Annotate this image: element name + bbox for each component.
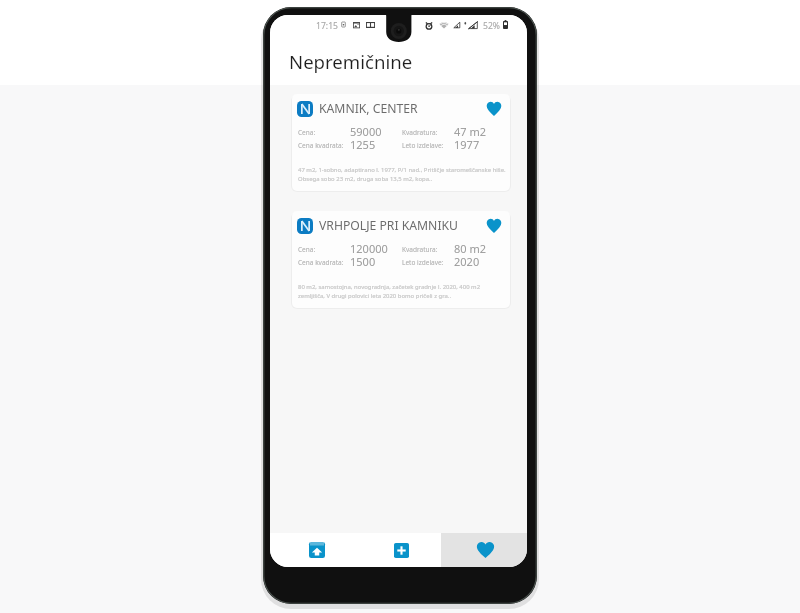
staticText: zemljišča, V drugi polovici leta 2020 bo… [298,292,452,300]
button[interactable]: Favorites [441,533,527,567]
staticText: Kvadratura: [402,245,438,254]
staticText: 47 m2 [454,124,487,139]
button[interactable]: Favorite [486,101,502,116]
button[interactable]: Favorite [486,218,502,233]
staticText: 1255 [350,137,376,152]
button[interactable]: KAMNIK, CENTER [292,94,510,191]
staticText: 17:15 [316,20,338,32]
staticText: 80 m2, samostojna, novogradnja, začetek … [298,283,481,291]
staticText: Cena: [298,245,316,254]
staticText: 120000 [350,241,388,256]
staticText: Kvadratura: [402,128,438,137]
staticText: VRHPOLJE PRI KAMNIKU [319,217,458,234]
staticText: Nepremičnine [289,49,413,74]
button[interactable]: Add [355,533,441,567]
staticText: 2020 [454,254,480,269]
staticText: 52% [483,20,500,32]
staticText: 1500 [350,254,376,269]
staticText: Cena kvadrata: [298,258,344,267]
button[interactable]: VRHPOLJE PRI KAMNIKU [292,211,510,308]
staticText: Obsega sobo 23 m2, druga soba 13,5 m2, k… [298,175,433,183]
staticText: 1977 [454,137,480,152]
staticText: Leto izdelave: [402,258,444,267]
staticText: Cena: [298,128,316,137]
button[interactable]: Upload [270,533,355,567]
staticText: KAMNIK, CENTER [319,100,418,117]
staticText: Cena kvadrata: [298,141,344,150]
staticText: 80 m2 [454,241,487,256]
staticText: 47 m2, 1-sobno, adaptirano l. 1977, P/1 … [298,166,506,174]
staticText: 59000 [350,124,382,139]
staticText: Leto izdelave: [402,141,444,150]
